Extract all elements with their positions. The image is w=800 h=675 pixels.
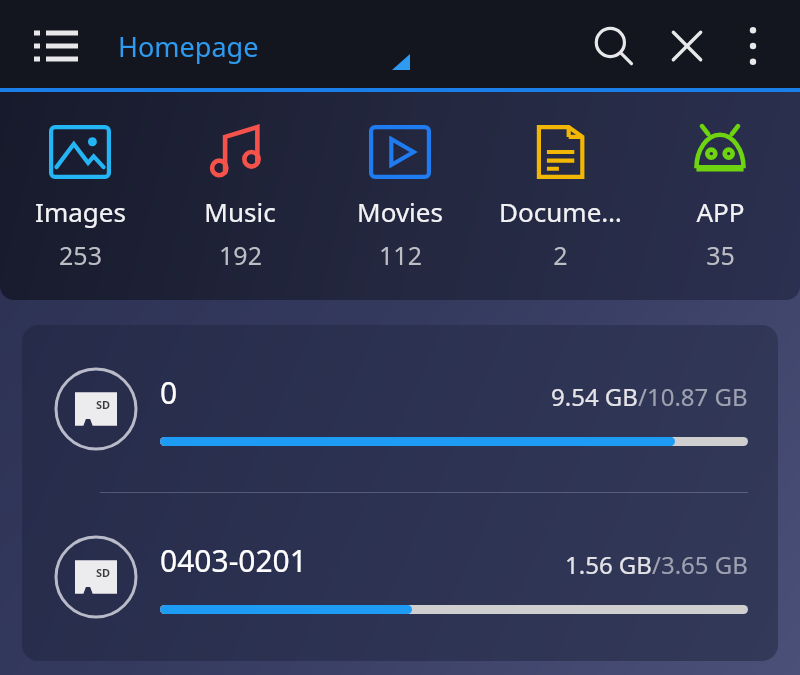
staticText: Movies	[357, 194, 443, 229]
staticText: Music	[204, 194, 276, 229]
staticText: 112	[379, 238, 422, 272]
staticText: APP	[696, 194, 745, 229]
staticText: Images	[35, 194, 126, 229]
staticText: SD	[96, 397, 111, 412]
button[interactable]: Homepage	[118, 28, 259, 65]
staticText: 35	[706, 238, 735, 272]
button[interactable]: Movies	[320, 92, 480, 300]
staticText: 192	[219, 238, 262, 272]
button[interactable]: Images	[0, 92, 160, 300]
staticText: Docume…	[499, 194, 622, 229]
staticText: 0	[160, 372, 178, 413]
staticText: 253	[59, 238, 102, 272]
button[interactable]: More options	[724, 9, 782, 83]
staticText: SD	[96, 565, 111, 580]
button[interactable]: SD	[22, 325, 778, 492]
staticText: 1.56 GB	[565, 548, 652, 581]
button[interactable]: Music	[160, 92, 320, 300]
button[interactable]: Search	[576, 9, 650, 83]
button[interactable]: Close	[650, 9, 724, 83]
staticText: /10.87 GB	[638, 380, 748, 413]
button[interactable]: APP	[640, 92, 800, 300]
button[interactable]: SD	[22, 493, 778, 660]
staticText: Homepage	[118, 28, 259, 65]
button[interactable]: Menu	[30, 20, 84, 72]
staticText: /3.65 GB	[652, 548, 748, 581]
staticText: 0403-0201	[160, 540, 307, 581]
staticText: 2	[553, 238, 568, 272]
staticText: 9.54 GB	[551, 380, 638, 413]
button[interactable]: Docume…	[480, 92, 640, 300]
